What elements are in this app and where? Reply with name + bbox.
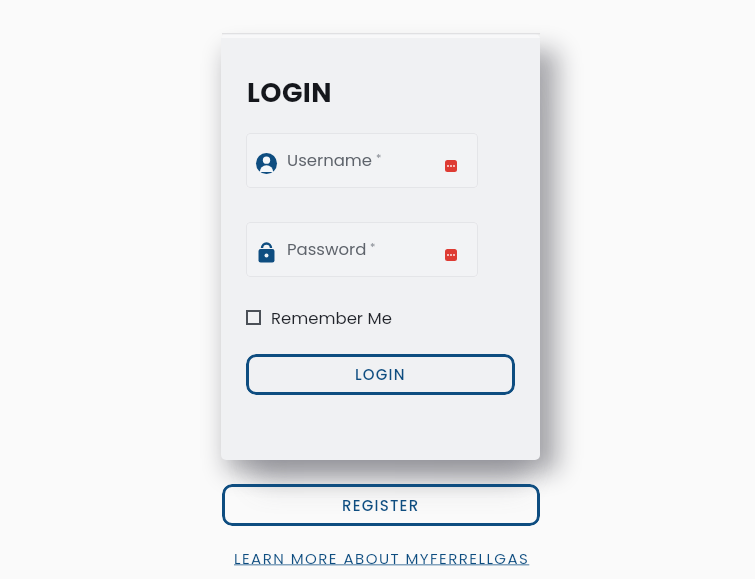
button[interactable]: Remember Me (246, 307, 392, 328)
staticText: * (370, 239, 376, 254)
button[interactable]: Account (246, 133, 478, 188)
button[interactable]: Password (246, 222, 478, 277)
button[interactable]: Password manager (445, 160, 457, 172)
staticText: LOGIN (355, 364, 406, 385)
button[interactable]: LOGIN (246, 354, 515, 395)
other: Account (256, 153, 277, 174)
button[interactable]: LEARN MORE ABOUT MYFERRELLGAS (234, 548, 530, 569)
staticText: LOGIN (247, 74, 332, 112)
staticText: * (376, 150, 382, 165)
button[interactable]: Password manager (445, 249, 457, 261)
button[interactable]: REGISTER (222, 484, 540, 526)
staticText: Username (287, 149, 373, 172)
staticText: Password (287, 238, 367, 261)
other: Password (256, 242, 277, 263)
staticText: REGISTER (342, 495, 420, 516)
staticText: Remember Me (271, 307, 392, 328)
